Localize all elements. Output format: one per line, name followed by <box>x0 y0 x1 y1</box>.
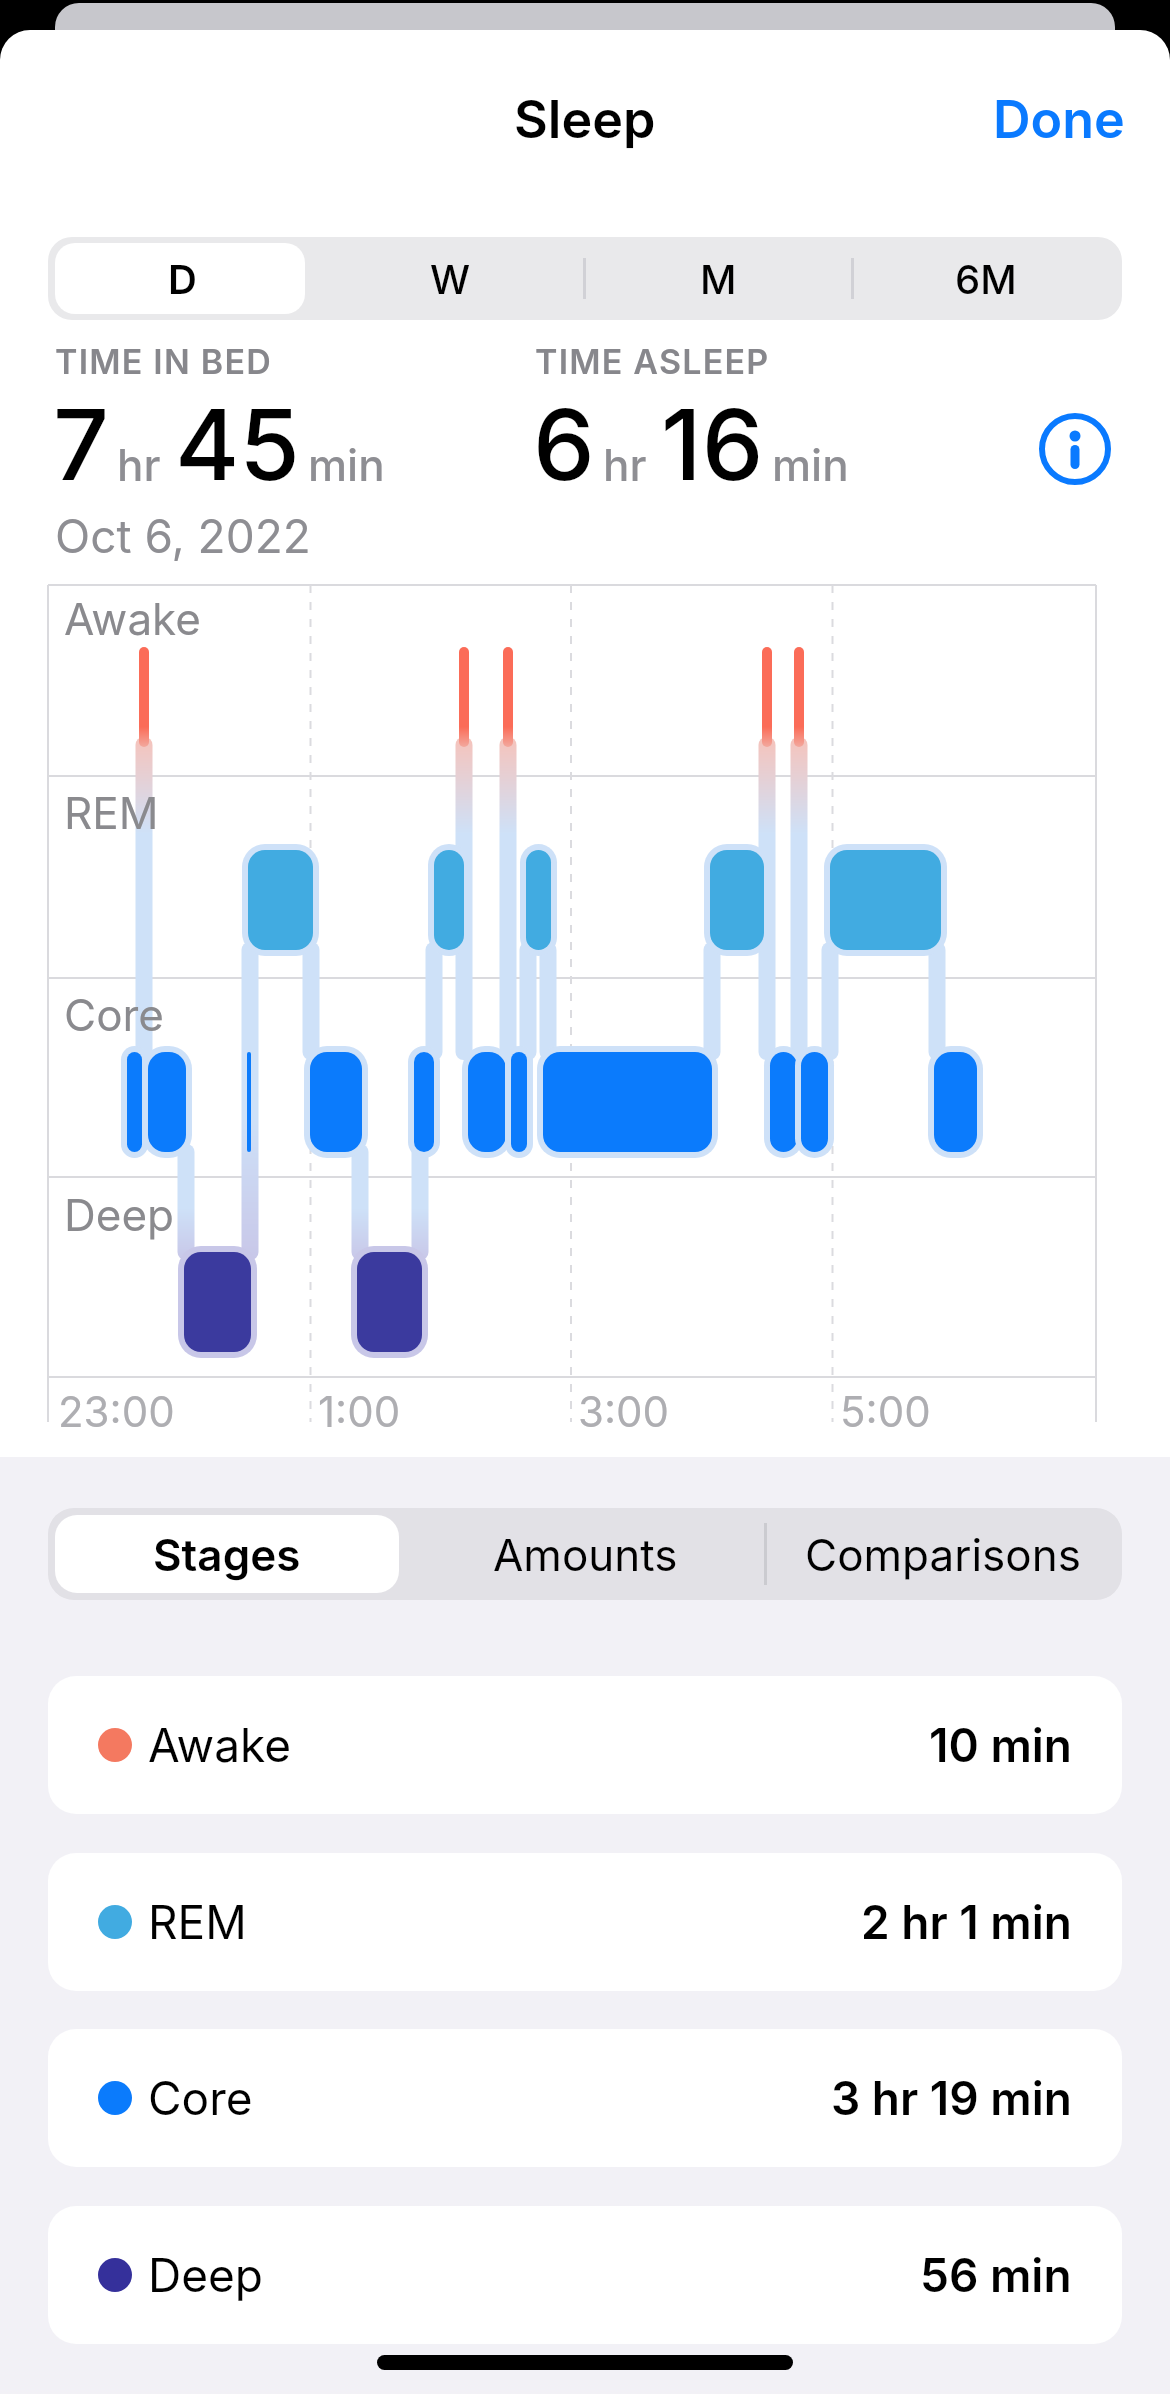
staticText: TIME ASLEEP <box>535 341 770 382</box>
staticText: 3 hr 19 min <box>831 2070 1072 2126</box>
staticText: Oct 6, 2022 <box>55 508 311 564</box>
staticText: 3:00 <box>578 1386 670 1437</box>
staticText: D <box>168 255 197 303</box>
staticText: Done <box>993 88 1125 151</box>
staticText: REM <box>64 786 159 839</box>
staticText: 56 min <box>920 2247 1072 2303</box>
button[interactable]: Amounts <box>406 1508 764 1600</box>
staticText: Core <box>64 988 165 1041</box>
button[interactable]: Stages <box>48 1508 406 1600</box>
staticText: TIME IN BED <box>55 341 272 382</box>
button[interactable]: D <box>48 237 316 320</box>
staticText: Comparisons <box>805 1528 1081 1581</box>
staticText: Sleep <box>514 88 656 151</box>
button[interactable] <box>1035 409 1115 489</box>
staticText: Deep <box>148 2247 263 2303</box>
button[interactable]: W <box>316 237 584 320</box>
button[interactable]: Comparisons <box>764 1508 1122 1600</box>
staticText: 23:00 <box>58 1386 175 1437</box>
staticText: 7 <box>53 385 109 504</box>
button[interactable]: Done <box>993 88 1125 151</box>
staticText: W <box>430 255 471 303</box>
staticText: REM <box>148 1894 247 1950</box>
staticText: Core <box>148 2070 253 2126</box>
staticText: 6 <box>533 385 595 504</box>
staticText: hr <box>603 438 647 491</box>
staticText: Deep <box>64 1188 174 1241</box>
staticText: 6M <box>955 255 1017 303</box>
staticText: Stages <box>153 1528 301 1581</box>
staticText: Amounts <box>493 1528 678 1581</box>
staticText: Awake <box>148 1717 292 1773</box>
staticText: 10 min <box>929 1717 1072 1773</box>
button[interactable]: Deep <box>48 2206 1122 2344</box>
button[interactable]: Awake <box>48 1676 1122 1814</box>
button[interactable]: Core <box>48 2029 1122 2167</box>
staticText: hr <box>117 438 161 491</box>
staticText: min <box>772 438 849 491</box>
staticText: 1:00 <box>318 1386 401 1437</box>
staticText: 16 <box>661 385 764 504</box>
staticText: Awake <box>64 592 201 645</box>
staticText: 2 hr 1 min <box>861 1894 1072 1950</box>
staticText: M <box>700 255 737 303</box>
button[interactable]: REM <box>48 1853 1122 1991</box>
staticText: min <box>308 438 385 491</box>
button[interactable]: M <box>584 237 852 320</box>
button[interactable]: 6M <box>852 237 1120 320</box>
staticText: 5:00 <box>840 1386 931 1437</box>
staticText: 45 <box>175 385 300 504</box>
